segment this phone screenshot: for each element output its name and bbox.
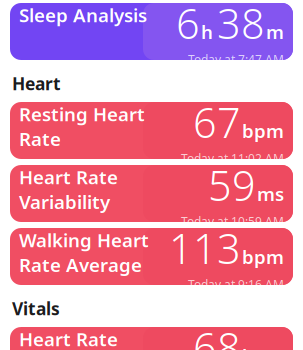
staticText: Sleep Analysis	[19, 3, 147, 27]
button[interactable]: Resting Heart Rate	[10, 102, 293, 159]
staticText: 113	[169, 221, 241, 275]
staticText: bpm	[242, 343, 284, 350]
staticText: Walking Heart Rate Average	[19, 228, 149, 277]
staticText: Today at 9:16 AM	[188, 276, 284, 292]
staticText: Today at 7:47 AM	[188, 51, 284, 67]
staticText: bpm	[242, 244, 284, 269]
staticText: Today at 11:02 AM	[181, 150, 284, 166]
button[interactable]: Heart Rate	[10, 327, 293, 350]
button[interactable]: Walking Heart Rate Average	[10, 228, 293, 285]
staticText: 68	[193, 320, 241, 350]
staticText: Heart	[12, 72, 61, 95]
staticText: Heart Rate Variability	[19, 165, 118, 214]
button[interactable]: Heart Rate Variability	[10, 165, 293, 222]
staticText: 38	[217, 0, 265, 50]
button[interactable]: Sleep Analysis	[10, 3, 293, 60]
staticText: h	[201, 19, 213, 44]
staticText: Heart Rate	[19, 327, 118, 350]
staticText: Resting Heart Rate	[19, 102, 145, 151]
staticText: Vitals	[12, 297, 60, 320]
staticText: 6	[176, 0, 200, 50]
staticText: m	[266, 19, 284, 44]
staticText: ms	[257, 181, 284, 206]
staticText: bpm	[242, 118, 284, 143]
staticText: Today at 10:59 AM	[181, 213, 284, 229]
staticText: 59	[208, 158, 256, 212]
staticText: 67	[193, 95, 241, 149]
